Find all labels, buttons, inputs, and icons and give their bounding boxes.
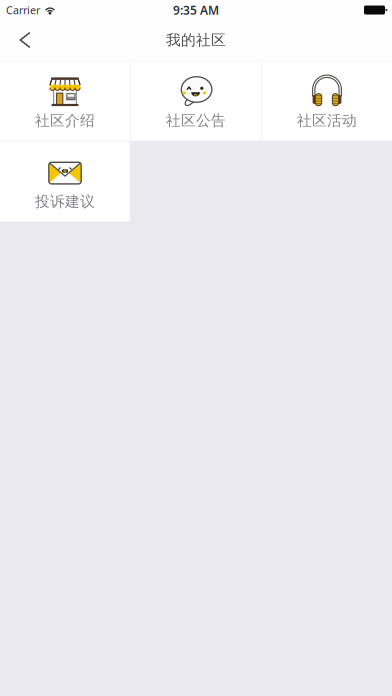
staticText: 社区介绍 <box>35 111 95 129</box>
button[interactable]: 社区介绍 <box>0 60 130 140</box>
staticText: 我的社区 <box>166 31 226 49</box>
button[interactable]: 投诉建议 <box>0 141 130 221</box>
button[interactable]: 社区活动 <box>262 60 392 140</box>
button[interactable]: Back <box>0 20 50 60</box>
staticText: 投诉建议 <box>35 192 95 210</box>
staticText: 社区活动 <box>297 111 357 129</box>
button[interactable]: 社区公告 <box>131 60 261 140</box>
staticText: 9:35 AM <box>173 2 219 18</box>
staticText: Carrier <box>6 3 40 17</box>
staticText: 社区公告 <box>166 111 226 129</box>
